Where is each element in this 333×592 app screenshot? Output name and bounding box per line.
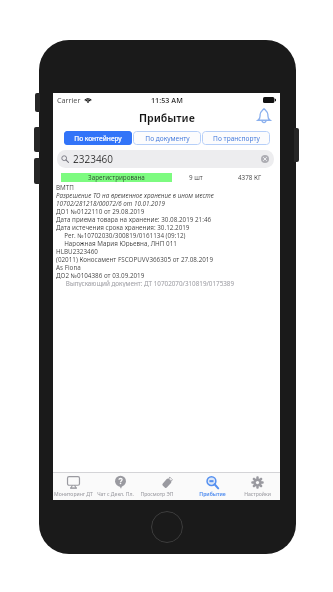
button[interactable]: Notifications	[255, 108, 272, 125]
button[interactable]: Мониторинг ДТ	[51, 473, 96, 500]
button[interactable]: 2323460	[57, 150, 274, 168]
staticText: (02011) Коносамент FSCOPUVV366305 от 27.…	[56, 255, 214, 263]
staticText: Разрешение ТО на временное хранение в ин…	[56, 191, 214, 199]
button[interactable]: Прибытие	[190, 473, 235, 500]
staticText: Carrier	[57, 95, 81, 105]
staticText: Нарожная Мария Юрьевна, ЛНП 011	[56, 239, 177, 247]
staticText: 10702/281218/00072/6 от 10.01.2019	[56, 199, 165, 207]
staticText: По транспорту	[213, 134, 260, 143]
staticText: По контейнеру	[74, 134, 122, 143]
button[interactable]: По транспорту	[202, 131, 270, 145]
button[interactable]: Просмотр ЭП	[145, 473, 190, 500]
staticText: Дата приема товара на хранение: 30.08.20…	[56, 215, 212, 223]
staticText: По документу	[145, 134, 190, 143]
staticText: As Fiona	[56, 263, 81, 271]
staticText: ВМТП	[56, 183, 74, 191]
staticText: Прибытие	[199, 491, 226, 498]
button[interactable]: Чат с Декл. Пл.	[98, 473, 143, 500]
staticText: Чат с Декл. Пл.	[97, 491, 134, 498]
button[interactable]: По документу	[133, 131, 201, 145]
staticText: Выпускающий документ: ДТ 10702070/310819…	[56, 279, 235, 287]
staticText: Рег. №10702030/300819/0161134 (09:12)	[56, 231, 186, 239]
staticText: HLBU2323460	[56, 247, 98, 255]
staticText: 4378 КГ	[238, 173, 262, 182]
staticText: ДО1 №0122110 от 29.08.2019	[56, 207, 145, 215]
button[interactable]: По контейнеру	[64, 131, 132, 145]
staticText: Прибытие	[139, 111, 195, 125]
staticText: Просмотр ЭП	[140, 491, 174, 498]
staticText: Зарегистрирована	[88, 173, 145, 182]
staticText: 11:53 AM	[151, 95, 183, 105]
staticText: 2323460	[73, 152, 114, 166]
staticText: Настройки	[244, 491, 271, 498]
staticText: ДО2 №0104386 от 03.09.2019	[56, 271, 145, 279]
staticText: 9 шт	[189, 173, 203, 182]
staticText: Мониторинг ДТ	[54, 491, 93, 498]
button[interactable]: Настройки	[235, 473, 280, 500]
staticText: Дата истечения срока хранения: 30.12.201…	[56, 223, 190, 231]
button[interactable]: Clear text	[261, 155, 269, 163]
